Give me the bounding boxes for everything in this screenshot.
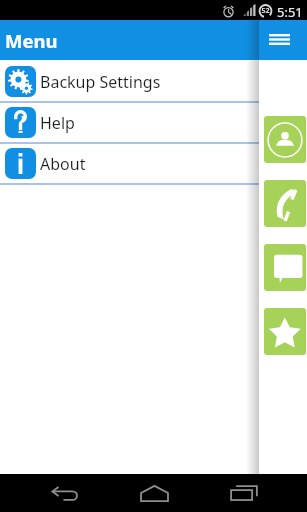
button[interactable]: Open navigation menu: [255, 20, 303, 60]
button[interactable]: Back: [26, 474, 102, 512]
staticText: Backup Settings: [40, 71, 161, 93]
button[interactable]: Contacts: [264, 116, 306, 163]
staticText: 52: [261, 6, 270, 16]
button[interactable]: Help: [0, 103, 259, 144]
staticText: Menu: [5, 28, 58, 53]
button[interactable]: Favorites: [264, 308, 306, 355]
button[interactable]: Messages: [264, 244, 306, 291]
staticText: 5:51: [277, 3, 303, 21]
button[interactable]: Home: [116, 474, 192, 512]
staticText: About: [40, 153, 86, 175]
staticText: Help: [40, 112, 75, 134]
button[interactable]: About: [0, 144, 259, 185]
button[interactable]: Call: [264, 180, 306, 227]
button[interactable]: Backup Settings: [0, 62, 259, 103]
button[interactable]: Recents: [206, 474, 282, 512]
